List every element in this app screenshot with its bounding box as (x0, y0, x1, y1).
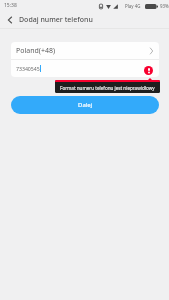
staticText: 73340545 (16, 65, 40, 72)
staticText: 15:38 (4, 2, 17, 9)
staticText: Poland(+48) (16, 46, 56, 56)
button[interactable]: Poland(+48) (11, 42, 159, 59)
staticText: Format numeru telefonu jest nieprawidłow… (60, 85, 155, 91)
button[interactable]: 73340545 (11, 60, 159, 77)
staticText: Dalej (78, 101, 93, 109)
staticText: 93% (160, 3, 169, 9)
other: Error (144, 66, 153, 75)
button[interactable]: Dalej (11, 96, 159, 114)
staticText: Play 4G (125, 3, 141, 9)
staticText: Dodaj numer telefonu (19, 15, 93, 25)
button[interactable]: Back (0, 12, 19, 27)
